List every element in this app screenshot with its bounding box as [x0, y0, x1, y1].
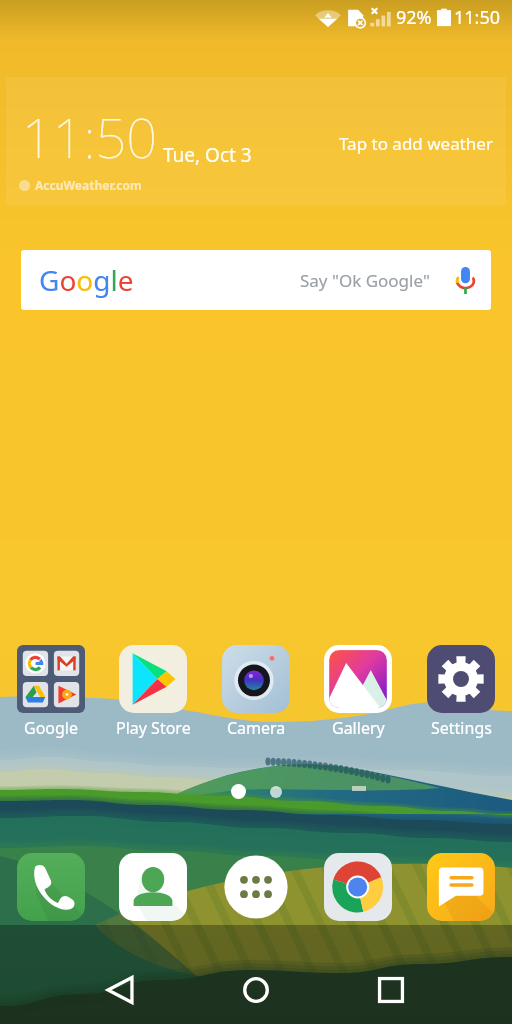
- staticText: Play Store: [116, 717, 191, 739]
- button[interactable]: Tap to add weather: [339, 132, 493, 155]
- button[interactable]: Back: [86, 956, 154, 1024]
- button[interactable]: Apps: [205, 853, 307, 921]
- staticText: Google: [24, 717, 79, 739]
- button[interactable]: Home: [222, 956, 290, 1024]
- button[interactable]: 11:50: [6, 77, 506, 205]
- staticText: Google: [39, 261, 134, 299]
- button[interactable]: Recents: [357, 956, 425, 1024]
- button[interactable]: Settings: [410, 645, 512, 739]
- button[interactable]: Google: [0, 645, 102, 739]
- button[interactable]: Gallery: [307, 645, 409, 739]
- staticText: Camera: [227, 717, 286, 739]
- button[interactable]: Google: [21, 250, 491, 310]
- staticText: Gallery: [332, 717, 385, 739]
- staticText: 92%: [396, 5, 432, 30]
- staticText: Tap to add weather: [339, 132, 493, 155]
- staticText: Say "Ok Google": [300, 269, 430, 292]
- staticText: AccuWeather.com: [35, 177, 142, 193]
- staticText: 11:50: [454, 5, 501, 30]
- button[interactable]: Phone: [0, 853, 102, 921]
- staticText: 11:50: [22, 100, 157, 174]
- button[interactable]: Messages: [410, 853, 512, 921]
- button[interactable]: Chrome: [307, 853, 409, 921]
- button[interactable]: Contacts: [102, 853, 204, 921]
- other: Voice search: [456, 267, 475, 294]
- button[interactable]: Camera: [205, 645, 307, 739]
- button[interactable]: Play Store: [102, 645, 204, 739]
- staticText: Settings: [431, 717, 492, 739]
- staticText: Tue, Oct 3: [163, 142, 252, 168]
